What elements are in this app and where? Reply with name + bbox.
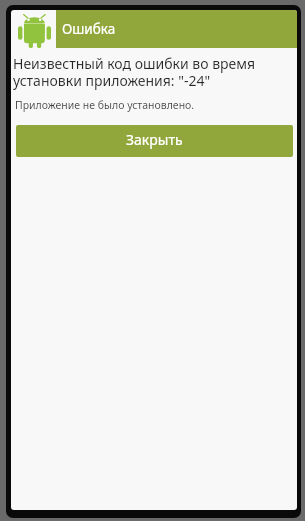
button[interactable]: Закрыть <box>16 125 293 157</box>
staticText: Закрыть <box>126 130 183 149</box>
staticText: Неизвестный код ошибки во время установк… <box>13 54 256 90</box>
staticText: Приложение не было установлено. <box>15 98 195 112</box>
staticText: Ошибка <box>62 20 116 38</box>
